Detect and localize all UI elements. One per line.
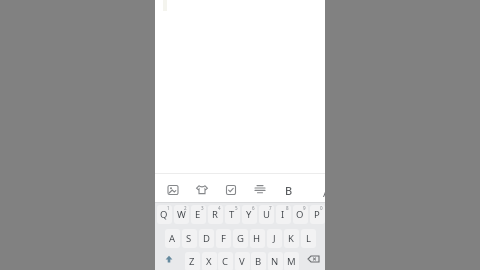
button[interactable]: P xyxy=(309,203,325,225)
staticText: J xyxy=(273,232,276,245)
staticText: 9 xyxy=(303,205,306,211)
button[interactable]: H xyxy=(249,227,265,249)
staticText: A xyxy=(323,185,325,200)
staticText: G xyxy=(237,232,244,245)
staticText: 8 xyxy=(286,205,289,211)
button[interactable]: Z xyxy=(184,250,200,270)
button[interactable]: D xyxy=(198,227,214,249)
button[interactable]: X xyxy=(201,250,217,270)
button[interactable]: U xyxy=(258,203,274,225)
staticText: H xyxy=(253,232,261,245)
staticText: 2 xyxy=(184,205,187,211)
button[interactable]: B xyxy=(250,250,266,270)
button[interactable] xyxy=(194,182,210,198)
button[interactable] xyxy=(159,250,178,270)
staticText: Q xyxy=(160,208,168,221)
staticText: V xyxy=(239,255,245,268)
staticText: 3 xyxy=(201,205,204,211)
staticText: 5 xyxy=(235,205,238,211)
button[interactable]: M xyxy=(283,250,299,270)
staticText: F xyxy=(221,232,226,245)
button[interactable]: B xyxy=(281,182,297,198)
staticText: 6 xyxy=(252,205,255,211)
staticText: O xyxy=(296,208,304,221)
button[interactable]: Y xyxy=(241,203,257,225)
button[interactable]: L xyxy=(300,227,316,249)
staticText: 0 xyxy=(320,205,323,211)
staticText: I xyxy=(281,208,285,221)
button[interactable]: J xyxy=(266,227,282,249)
button[interactable] xyxy=(165,182,181,198)
button[interactable]: S xyxy=(181,227,197,249)
staticText: Y xyxy=(246,208,252,221)
staticText: T xyxy=(229,208,235,221)
button[interactable]: N xyxy=(267,250,283,270)
button[interactable] xyxy=(304,250,323,270)
staticText: R xyxy=(212,208,218,221)
button[interactable]: I xyxy=(275,203,291,225)
button[interactable]: R xyxy=(207,203,223,225)
button[interactable]: Q xyxy=(156,203,172,225)
staticText: B xyxy=(255,255,262,268)
button[interactable]: G xyxy=(232,227,248,249)
staticText: U xyxy=(263,208,270,221)
staticText: X xyxy=(206,255,212,268)
button[interactable]: K xyxy=(283,227,299,249)
staticText: Z xyxy=(189,255,195,268)
button[interactable]: C xyxy=(217,250,233,270)
staticText: 1 xyxy=(167,205,170,211)
staticText: M xyxy=(287,255,296,268)
staticText: 7 xyxy=(269,205,272,211)
staticText: C xyxy=(222,255,229,268)
staticText: E xyxy=(195,208,201,221)
button[interactable]: V xyxy=(234,250,250,270)
staticText: K xyxy=(288,232,294,245)
staticText: A xyxy=(169,232,176,245)
staticText: N xyxy=(271,255,279,268)
button[interactable] xyxy=(223,182,239,198)
button[interactable]: T xyxy=(224,203,240,225)
button[interactable]: A xyxy=(164,227,180,249)
staticText: P xyxy=(314,208,320,221)
staticText: D xyxy=(203,232,210,245)
staticText: 4 xyxy=(218,205,221,211)
staticText: L xyxy=(306,232,311,245)
staticText: B xyxy=(285,183,293,198)
button[interactable]: E xyxy=(190,203,206,225)
button[interactable] xyxy=(252,182,268,198)
button[interactable]: F xyxy=(215,227,231,249)
staticText: W xyxy=(177,208,186,221)
button[interactable]: W xyxy=(173,203,189,225)
button[interactable]: O xyxy=(292,203,308,225)
staticText: S xyxy=(186,232,192,245)
